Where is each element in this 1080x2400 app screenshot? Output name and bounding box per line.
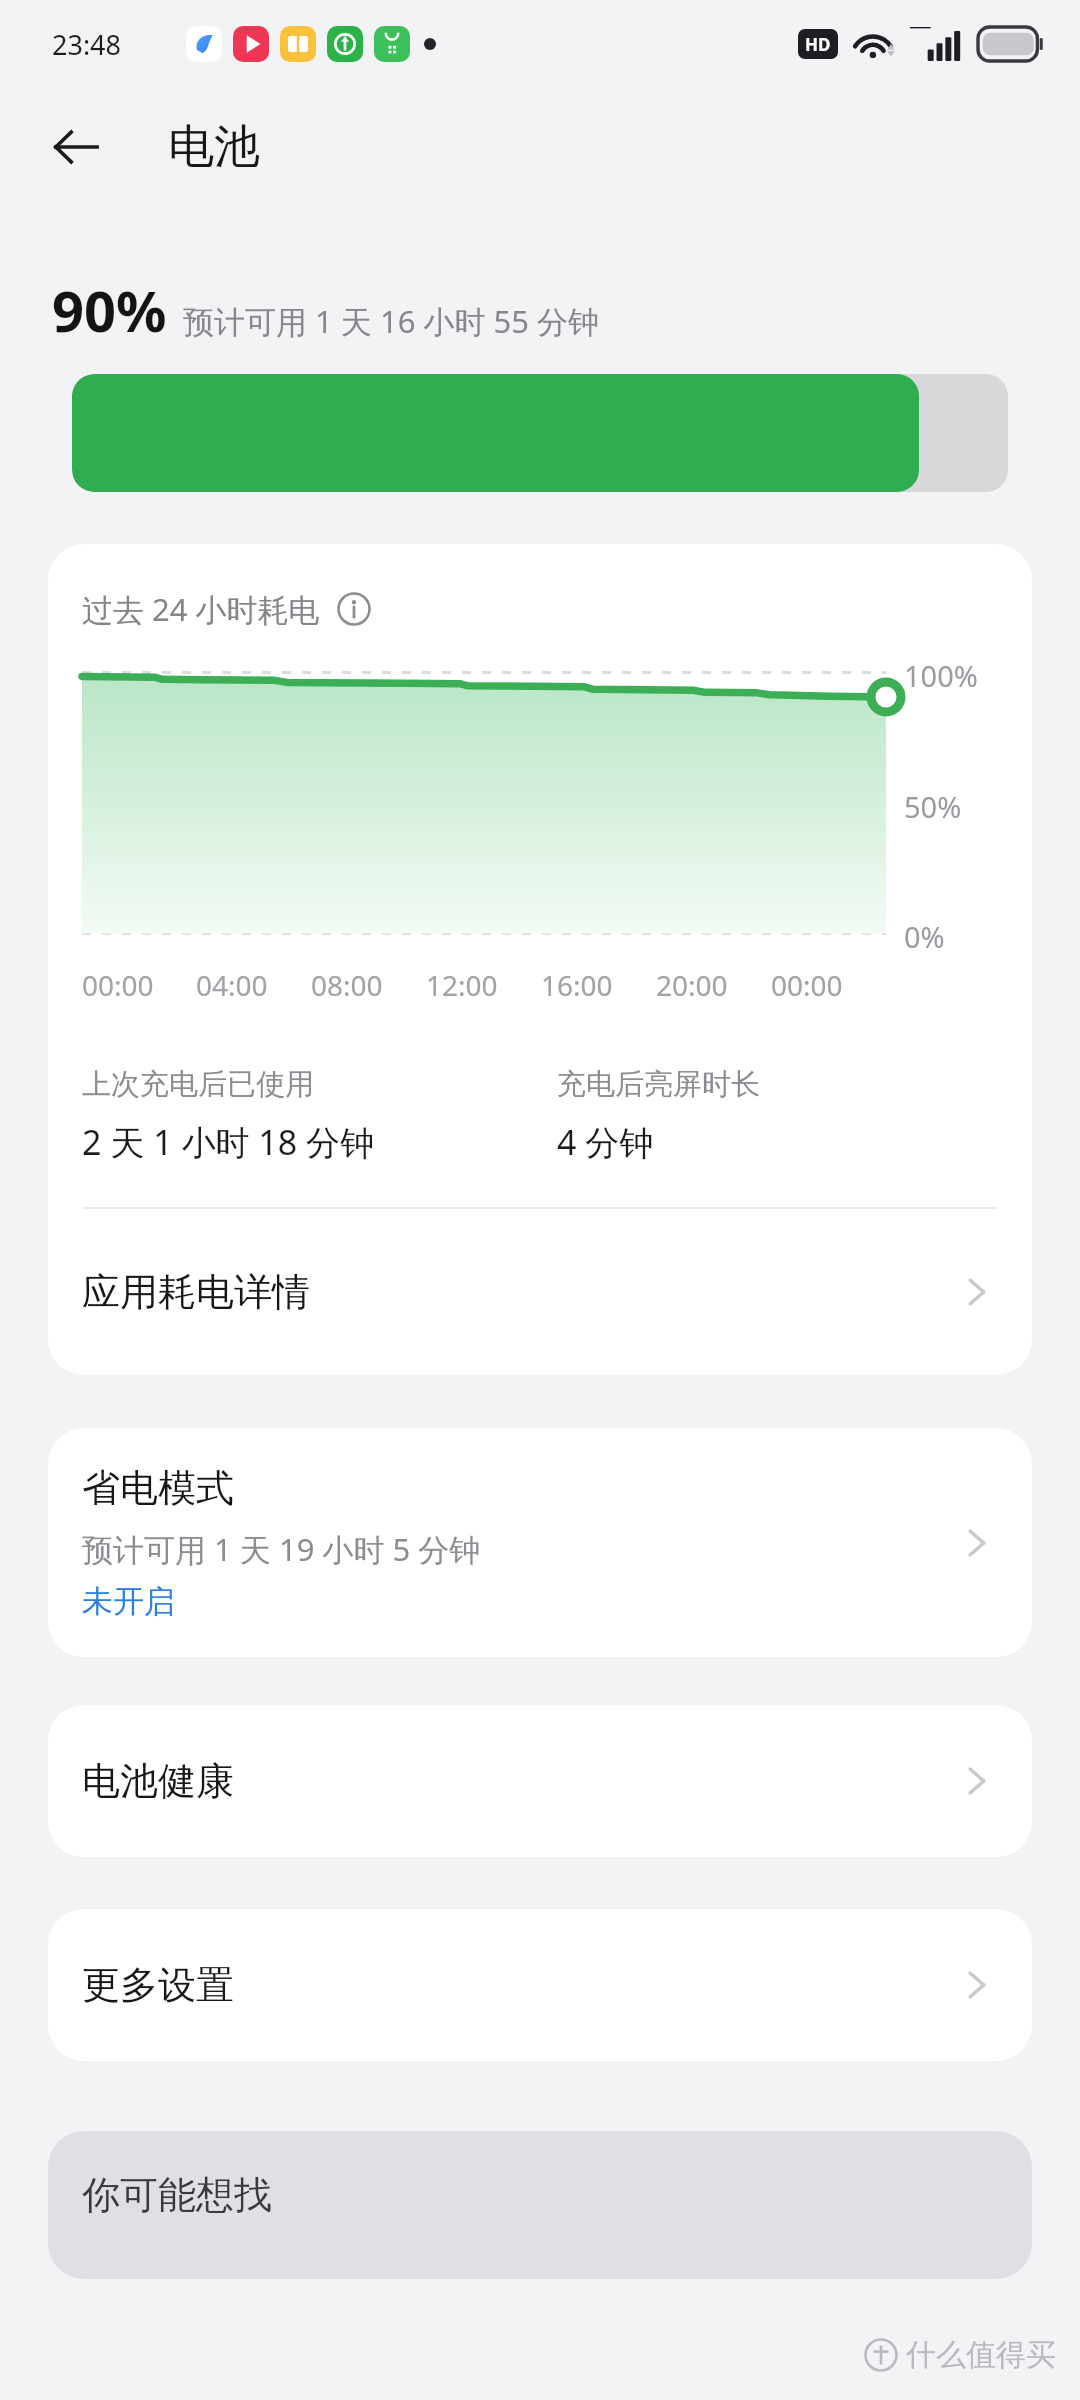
staticText: 00:00 xyxy=(771,966,843,1004)
staticText: 0% xyxy=(904,917,945,956)
staticText: 20:00 xyxy=(656,966,728,1004)
staticText: 08:00 xyxy=(311,966,383,1004)
button[interactable]: 说明 xyxy=(334,589,374,629)
staticText: 省电模式 xyxy=(82,1464,234,1512)
staticText: 00:00 xyxy=(82,966,154,1004)
staticText: 应用耗电详情 xyxy=(82,1268,310,1316)
staticText: 04:00 xyxy=(196,966,268,1004)
button[interactable]: 应用耗电详情 xyxy=(48,1209,1032,1375)
staticText: 2 天 1 小时 18 分钟 xyxy=(82,1119,374,1165)
staticText: 12:00 xyxy=(426,966,498,1004)
staticText: 未开启 xyxy=(82,1582,175,1621)
staticText: 充电后亮屏时长 xyxy=(557,1066,760,1103)
button[interactable]: 你可能想找 xyxy=(48,2131,1032,2279)
staticText: 更多设置 xyxy=(82,1961,234,2009)
staticText: 预计可用 1 天 19 小时 5 分钟 xyxy=(82,1528,481,1570)
staticText: 电池健康 xyxy=(82,1757,234,1805)
staticText: 16:00 xyxy=(541,966,613,1004)
staticText: 90% xyxy=(52,272,167,348)
staticText: 什么值得买 xyxy=(906,2336,1056,2374)
button[interactable]: Back xyxy=(30,101,122,193)
staticText: HD xyxy=(805,33,831,56)
staticText: 预计可用 1 天 16 小时 55 分钟 xyxy=(183,300,600,342)
staticText: 4 分钟 xyxy=(557,1119,654,1165)
staticText: 23:48 xyxy=(52,26,122,63)
staticText: 上次充电后已使用 xyxy=(82,1066,314,1103)
button[interactable]: 更多设置 xyxy=(48,1909,1032,2061)
staticText: 100% xyxy=(904,656,978,695)
staticText: 你可能想找 xyxy=(82,2171,272,2219)
button[interactable]: 省电模式 xyxy=(48,1428,1032,1657)
staticText: 电池 xyxy=(168,118,260,176)
staticText: 过去 24 小时耗电 xyxy=(82,588,320,630)
button[interactable]: 电池健康 xyxy=(48,1705,1032,1857)
staticText: 50% xyxy=(904,787,962,826)
